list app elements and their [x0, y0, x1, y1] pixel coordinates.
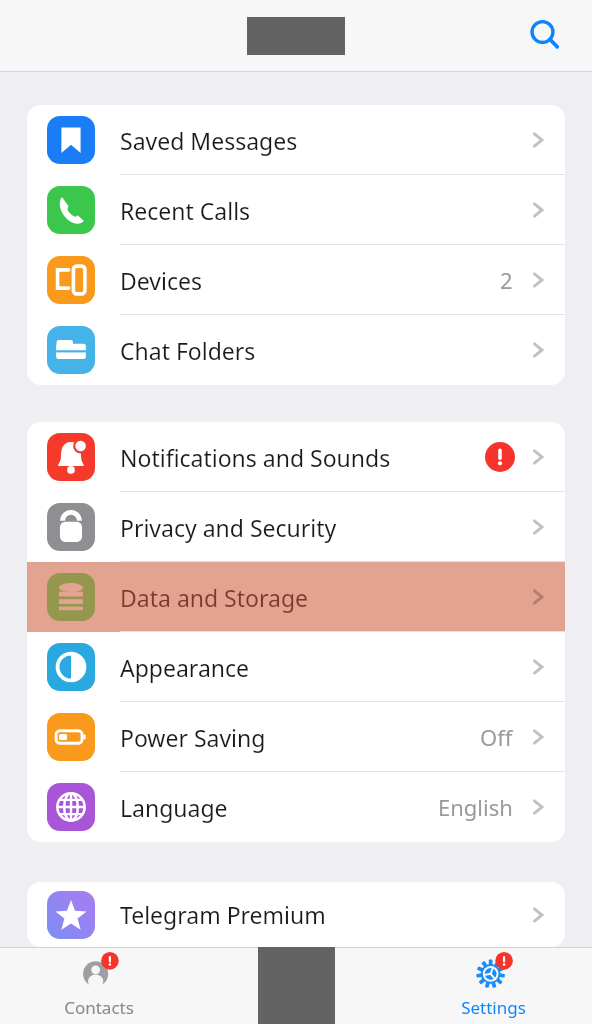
staticText: English [438, 792, 513, 822]
staticText: Contacts [64, 996, 134, 1019]
button[interactable]: Data and Storage [27, 562, 565, 632]
staticText: Notifications and Sounds [120, 442, 485, 473]
button[interactable]: Search [522, 13, 568, 59]
staticText: Appearance [120, 652, 527, 683]
button[interactable]: Power Saving [27, 702, 565, 772]
staticText: Chat Folders [120, 335, 527, 366]
staticText: Telegram Premium [120, 899, 527, 930]
button[interactable]: Saved Messages [27, 105, 565, 175]
button[interactable]: Privacy and Security [27, 492, 565, 562]
button[interactable]: Telegram Premium [27, 882, 565, 947]
staticText: Power Saving [120, 722, 480, 753]
staticText: Privacy and Security [120, 512, 527, 543]
staticText: 2 [500, 265, 513, 295]
staticText: Data and Storage [120, 582, 527, 613]
staticText: Saved Messages [120, 125, 527, 156]
button[interactable]: Devices [27, 245, 565, 315]
button[interactable]: Notifications and Sounds [27, 422, 565, 492]
staticText: Settings [461, 996, 526, 1019]
staticText: Language [120, 792, 438, 823]
button[interactable]: Appearance [27, 632, 565, 702]
staticText: Off [480, 722, 513, 752]
staticText: Devices [120, 265, 500, 296]
button[interactable]: Recent Calls [27, 175, 565, 245]
staticText: Recent Calls [120, 195, 527, 226]
button[interactable]: Chat Folders [27, 315, 565, 385]
button[interactable]: Settings [395, 947, 592, 1024]
button[interactable]: Language [27, 772, 565, 842]
button[interactable]: Contacts [0, 947, 198, 1024]
